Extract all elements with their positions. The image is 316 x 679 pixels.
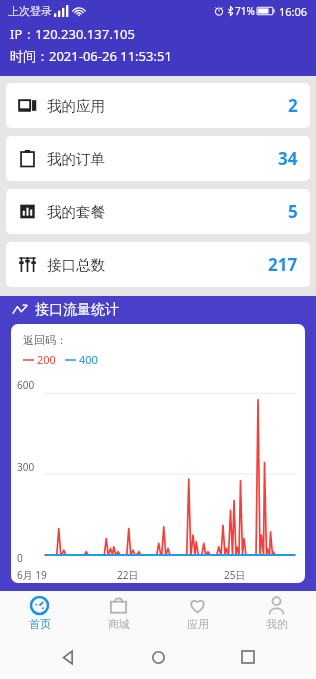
staticText: 6月 19: [17, 568, 47, 582]
button[interactable]: 首页: [0, 591, 79, 635]
button[interactable]: Recents: [226, 635, 270, 679]
staticText: 我的套餐: [47, 203, 105, 221]
button[interactable]: 我的套餐: [6, 189, 310, 234]
button[interactable]: 商城: [79, 591, 158, 635]
staticText: 接口流量统计: [35, 301, 119, 319]
staticText: 我的应用: [47, 97, 105, 115]
staticText: 34: [278, 147, 298, 170]
staticText: 71%: [235, 4, 255, 18]
staticText: 22日: [117, 568, 139, 582]
staticText: 商城: [108, 617, 130, 631]
button[interactable]: 接口总数: [6, 242, 310, 287]
button[interactable]: Home: [136, 635, 180, 679]
button[interactable]: Back: [46, 635, 90, 679]
staticText: 5: [288, 200, 298, 223]
staticText: IP：120.230.137.105: [10, 25, 135, 43]
button[interactable]: 应用: [158, 591, 237, 635]
staticText: 时间：2021-06-26 11:53:51: [10, 47, 172, 65]
staticText: 600: [17, 378, 35, 392]
staticText: 400: [79, 352, 98, 367]
staticText: 返回码：: [23, 333, 67, 347]
button[interactable]: 我的: [237, 591, 316, 635]
staticText: 2: [288, 94, 298, 117]
staticText: 300: [17, 460, 35, 474]
staticText: 接口总数: [47, 256, 105, 274]
staticText: 0: [17, 551, 23, 565]
staticText: 我的: [266, 617, 288, 631]
staticText: 25日: [224, 568, 246, 582]
staticText: 应用: [187, 617, 209, 631]
staticText: 16:06: [279, 4, 308, 19]
staticText: 我的订单: [47, 150, 105, 168]
staticText: 上次登录: [8, 4, 52, 18]
button[interactable]: 我的应用: [6, 83, 310, 128]
button[interactable]: 我的订单: [6, 136, 310, 181]
staticText: 200: [37, 352, 56, 367]
staticText: 217: [268, 253, 298, 276]
staticText: 首页: [29, 617, 51, 631]
